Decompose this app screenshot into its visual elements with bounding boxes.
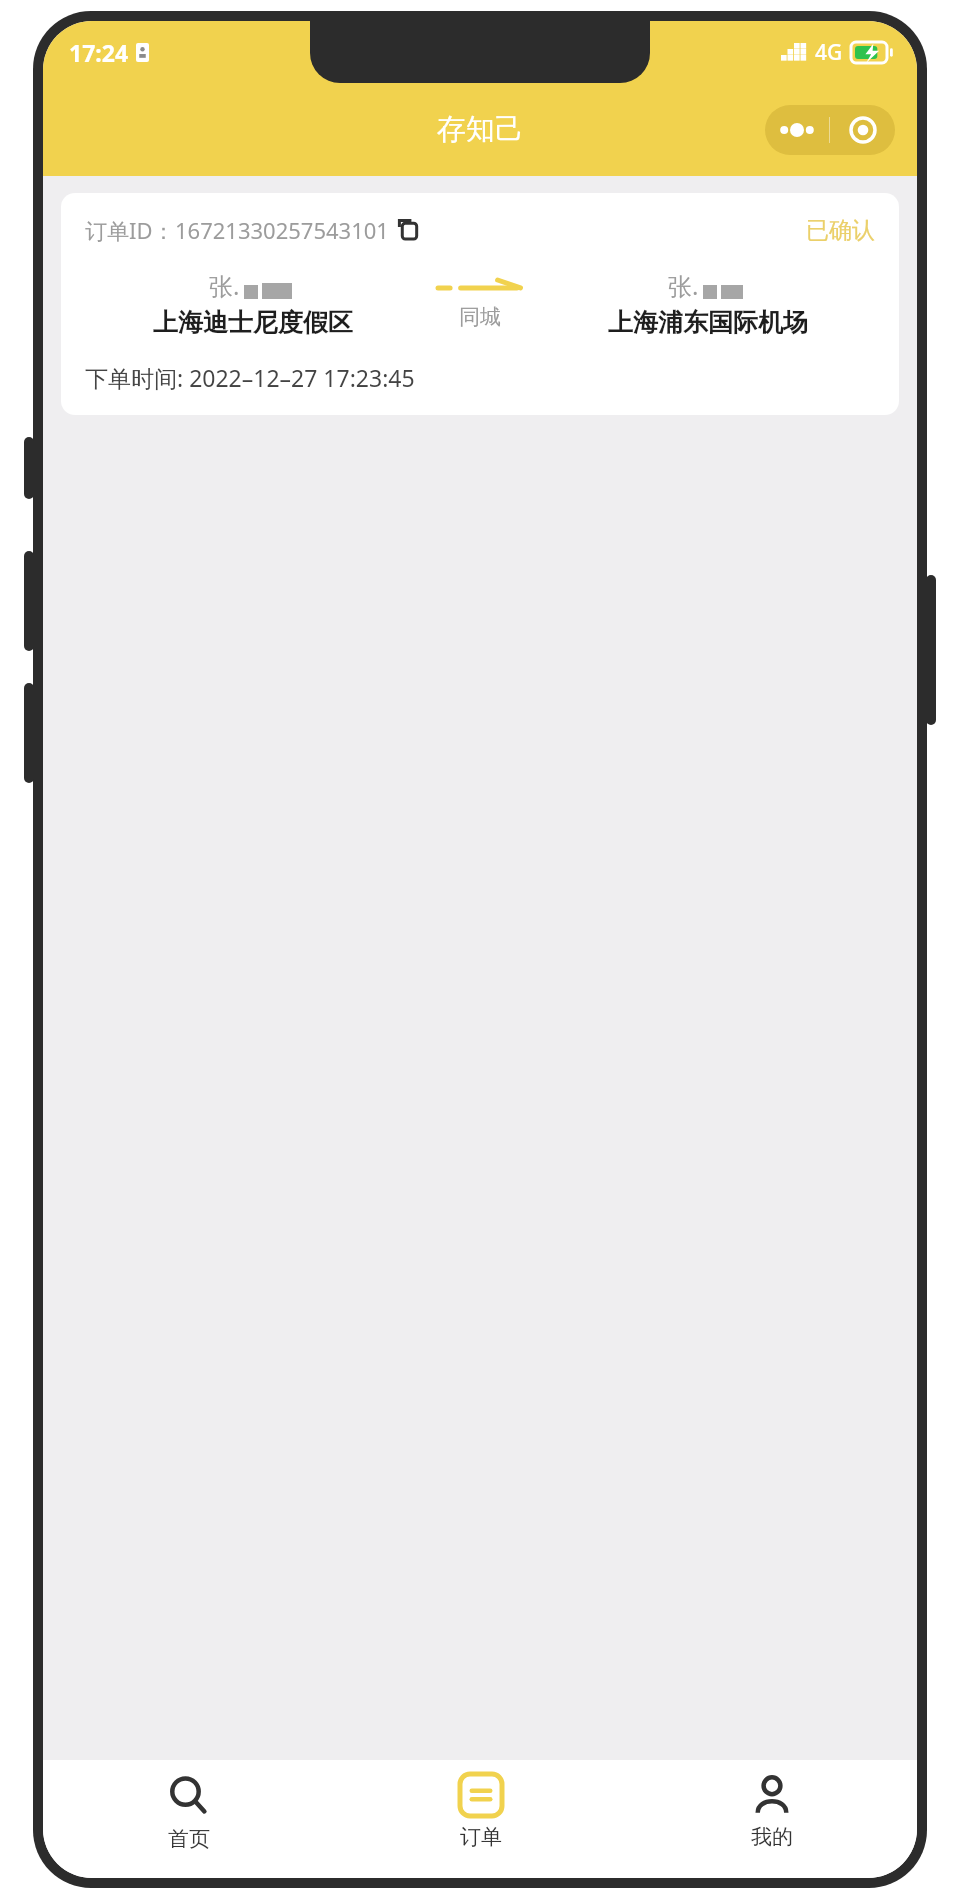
staticText: 订单ID： [85,215,175,245]
button[interactable]: More [765,105,895,155]
button[interactable]: 我的 [626,1760,917,1878]
staticText: 存知己 [437,111,524,148]
staticText: 上海浦东国际机场 [608,307,808,338]
other: Target [830,105,895,155]
staticText: 张. [668,269,699,302]
staticText: 我的 [751,1824,793,1850]
staticText: 已确认 [806,216,875,245]
staticText: 4G [815,38,843,67]
button[interactable]: 订单 [335,1760,626,1878]
staticText: 下单时间: 2022–12–27 17:23:45 [85,362,415,393]
staticText: 上海迪士尼度假区 [153,307,353,338]
staticText: 16721330257543101 [175,215,389,245]
staticText: 订单 [460,1824,502,1850]
button[interactable]: Copy [397,218,421,242]
button[interactable]: 订单ID： [61,193,899,415]
other: More [765,105,829,155]
staticText: 首页 [168,1826,210,1852]
staticText: 17:24 [69,37,129,68]
button[interactable]: 首页 [43,1760,335,1878]
staticText: 张. [209,269,240,302]
staticText: 同城 [459,304,501,330]
